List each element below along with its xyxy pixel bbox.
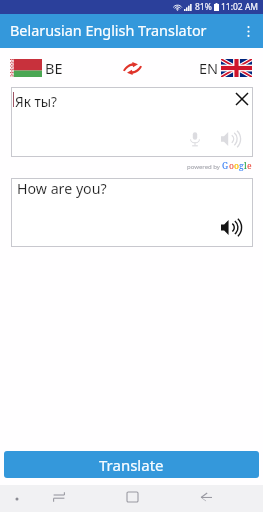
button[interactable]: Back (192, 483, 220, 510)
button[interactable]: Clear text (228, 85, 256, 113)
button[interactable]: Home (118, 483, 146, 510)
staticText: BE (45, 58, 63, 78)
button[interactable]: Voice input (182, 126, 208, 152)
button[interactable]: Listen to source text (218, 126, 244, 152)
staticText: Translate (99, 455, 164, 475)
staticText: g (239, 160, 244, 172)
staticText: Як ты? (15, 92, 57, 111)
staticText: EN (199, 58, 219, 78)
button[interactable]: Listen to translation (217, 213, 245, 241)
button[interactable]: Assistant (3, 485, 31, 512)
staticText: o (234, 160, 239, 172)
button[interactable]: Swap languages (115, 51, 149, 85)
staticText: Belarusian English Translator (10, 21, 207, 41)
staticText: G (222, 160, 229, 172)
staticText: e (247, 160, 252, 172)
staticText: o (229, 160, 234, 172)
staticText: l (244, 160, 247, 172)
button[interactable]: BE (0, 49, 69, 86)
staticText: 81% (195, 1, 212, 13)
button[interactable]: Recent apps (45, 483, 73, 510)
button[interactable]: Translate (4, 451, 259, 478)
staticText: How are you? (17, 179, 107, 198)
button[interactable]: More options (233, 16, 263, 46)
staticText: 11:02 AM (221, 1, 259, 13)
button[interactable]: EN (193, 49, 263, 86)
staticText: powered by (187, 163, 222, 171)
